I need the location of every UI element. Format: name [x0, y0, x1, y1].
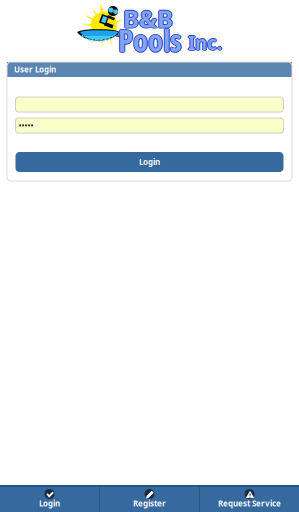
staticText: Pools — [119, 19, 182, 61]
staticText: Login — [139, 157, 160, 167]
staticText: Register — [133, 498, 166, 509]
staticText: Inc. — [187, 30, 221, 55]
staticText: B&B — [123, 3, 173, 36]
staticText: Inc. — [189, 30, 223, 55]
button[interactable] — [15, 97, 283, 112]
staticText: B&B — [122, 2, 172, 35]
button[interactable]: Register — [100, 485, 199, 512]
staticText: Inc. — [188, 30, 222, 55]
button[interactable]: ••••• — [15, 118, 283, 133]
staticText: Inc. — [188, 29, 222, 54]
staticText: Request Service — [218, 498, 281, 509]
staticText: Inc. — [188, 31, 222, 56]
staticText: Pools — [118, 19, 181, 61]
staticText: B&B — [123, 1, 173, 34]
button[interactable]: Login — [15, 152, 283, 172]
button[interactable]: Request Service — [200, 485, 299, 512]
staticText: User Login — [14, 64, 56, 75]
staticText: Login — [39, 498, 60, 509]
staticText: B&B — [124, 2, 174, 35]
staticText: Pools — [118, 18, 181, 60]
button[interactable]: Login — [0, 485, 99, 512]
staticText: Pools — [118, 20, 181, 62]
staticText: ••••• — [18, 120, 33, 131]
staticText: Pools — [117, 19, 180, 61]
staticText: B&B — [123, 2, 173, 35]
